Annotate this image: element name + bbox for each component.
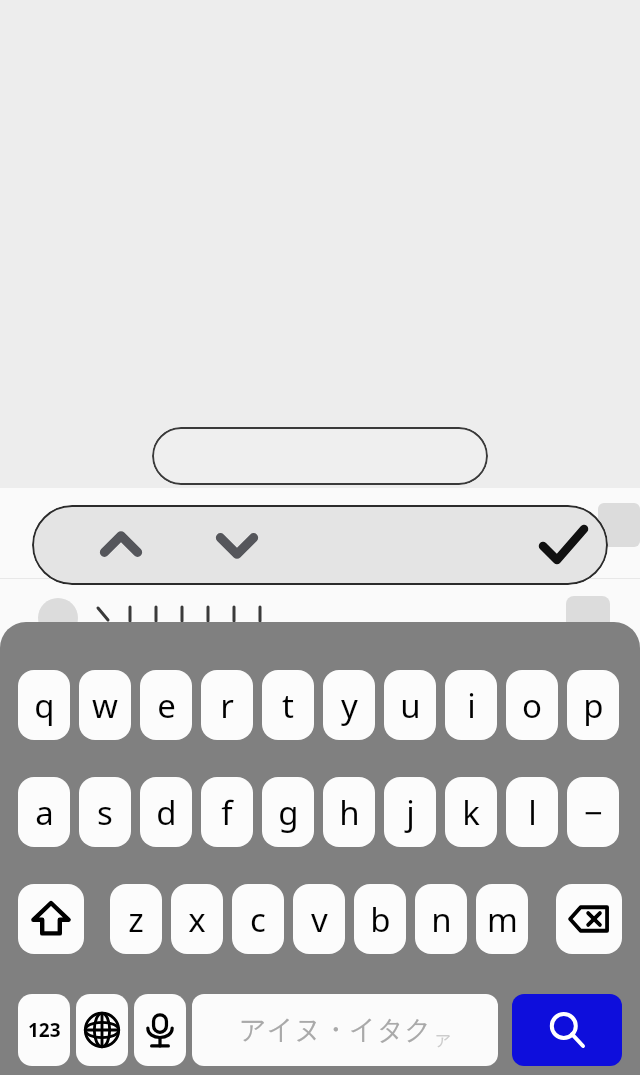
button[interactable]: d: [140, 777, 192, 847]
staticText: k: [462, 790, 480, 835]
button[interactable]: g: [262, 777, 314, 847]
button[interactable]: −: [567, 777, 619, 847]
staticText: r: [220, 683, 234, 728]
staticText: −: [584, 790, 603, 835]
staticText: q: [34, 683, 55, 728]
staticText: i: [467, 683, 476, 728]
staticText: e: [157, 683, 176, 728]
button[interactable]: 123: [18, 994, 70, 1066]
button[interactable]: t: [262, 670, 314, 740]
button[interactable]: y: [323, 670, 375, 740]
staticText: v: [311, 897, 328, 942]
button[interactable]: Backspace: [556, 884, 622, 954]
staticText: アイヌ・イタク: [239, 1013, 432, 1047]
staticText: y: [341, 683, 358, 728]
button[interactable]: Shift: [18, 884, 84, 954]
button[interactable]: [152, 427, 488, 485]
staticText: s: [97, 790, 113, 835]
button[interactable]: l: [506, 777, 558, 847]
staticText: f: [221, 790, 233, 835]
button[interactable]: Change language: [76, 994, 128, 1066]
button[interactable]: x: [171, 884, 223, 954]
staticText: m: [487, 897, 518, 942]
staticText: t: [282, 683, 294, 728]
staticText: c: [250, 897, 266, 942]
staticText: p: [583, 683, 604, 728]
button[interactable]: Search: [512, 994, 622, 1066]
button[interactable]: q: [18, 670, 70, 740]
button[interactable]: p: [567, 670, 619, 740]
staticText: ア: [435, 1031, 452, 1051]
button[interactable]: c: [232, 884, 284, 954]
button[interactable]: u: [384, 670, 436, 740]
button[interactable]: v: [293, 884, 345, 954]
button[interactable]: r: [201, 670, 253, 740]
button[interactable]: Done: [518, 505, 608, 585]
button[interactable]: h: [323, 777, 375, 847]
button[interactable]: f: [201, 777, 253, 847]
button[interactable]: Previous: [68, 505, 174, 585]
staticText: g: [278, 790, 299, 835]
button[interactable]: o: [506, 670, 558, 740]
button[interactable]: w: [79, 670, 131, 740]
button[interactable]: k: [445, 777, 497, 847]
button[interactable]: z: [110, 884, 162, 954]
staticText: j: [406, 790, 415, 835]
staticText: u: [400, 683, 421, 728]
staticText: h: [339, 790, 360, 835]
button[interactable]: アイヌ・イタク: [192, 994, 498, 1066]
button[interactable]: n: [415, 884, 467, 954]
button[interactable]: Next: [184, 505, 290, 585]
staticText: z: [128, 897, 144, 942]
button[interactable]: b: [354, 884, 406, 954]
staticText: x: [188, 897, 206, 942]
button[interactable]: m: [476, 884, 528, 954]
staticText: a: [35, 790, 54, 835]
button[interactable]: s: [79, 777, 131, 847]
button[interactable]: a: [18, 777, 70, 847]
staticText: l: [528, 790, 537, 835]
button[interactable]: i: [445, 670, 497, 740]
staticText: n: [431, 897, 452, 942]
button[interactable]: Voice input: [134, 994, 186, 1066]
button[interactable]: j: [384, 777, 436, 847]
staticText: w: [92, 683, 118, 728]
staticText: b: [370, 897, 391, 942]
staticText: o: [522, 683, 542, 728]
staticText: 123: [28, 1017, 61, 1043]
staticText: d: [156, 790, 177, 835]
button[interactable]: e: [140, 670, 192, 740]
